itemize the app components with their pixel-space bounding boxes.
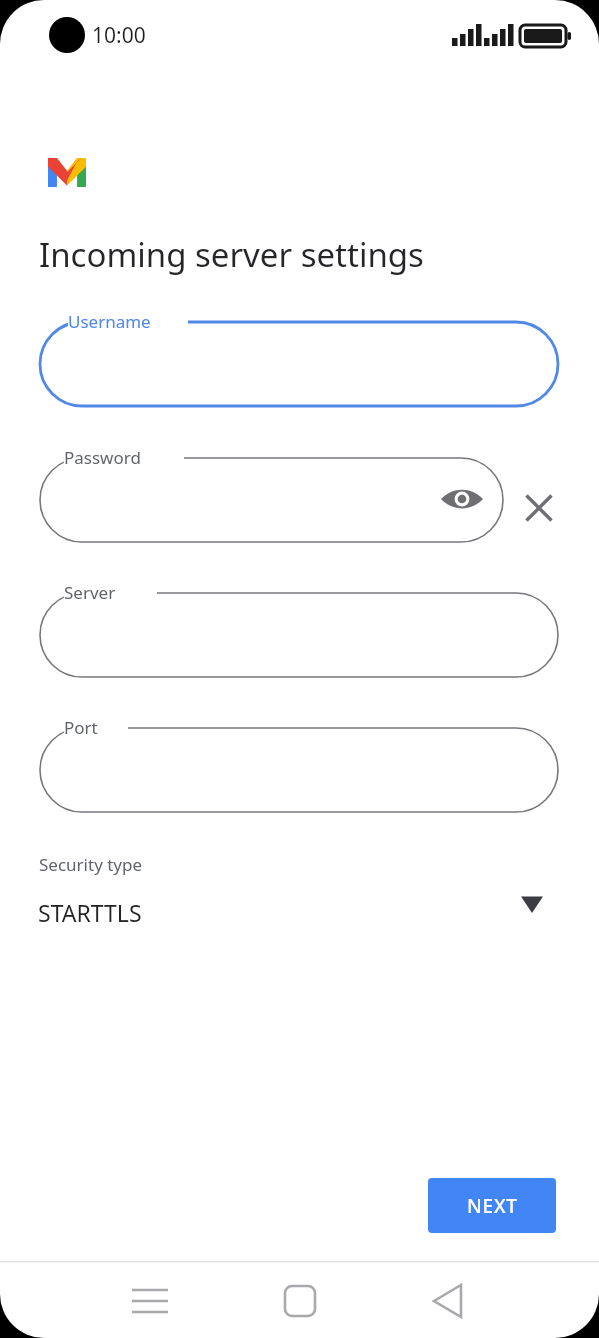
staticText: 10:00 <box>92 21 146 50</box>
staticText: Username <box>68 310 151 333</box>
button[interactable]: Server <box>40 593 558 677</box>
staticText: Server <box>64 581 116 604</box>
button[interactable]: Recents <box>110 1265 190 1337</box>
button[interactable]: Clear password <box>515 484 563 532</box>
button[interactable]: Port <box>40 728 558 812</box>
button[interactable]: Show password <box>438 475 486 523</box>
staticText: STARTTLS <box>38 897 142 928</box>
button[interactable]: Username <box>40 322 558 406</box>
staticText: Security type <box>39 853 143 876</box>
button[interactable]: NEXT <box>428 1178 556 1233</box>
staticText: NEXT <box>467 1193 518 1219</box>
staticText: Password <box>64 446 141 469</box>
staticText: Port <box>64 716 98 739</box>
button[interactable]: Back <box>409 1265 489 1337</box>
staticText: Incoming server settings <box>39 232 424 277</box>
button[interactable]: Password <box>40 458 503 542</box>
button[interactable] <box>20 845 579 940</box>
button[interactable]: Home <box>260 1265 340 1337</box>
